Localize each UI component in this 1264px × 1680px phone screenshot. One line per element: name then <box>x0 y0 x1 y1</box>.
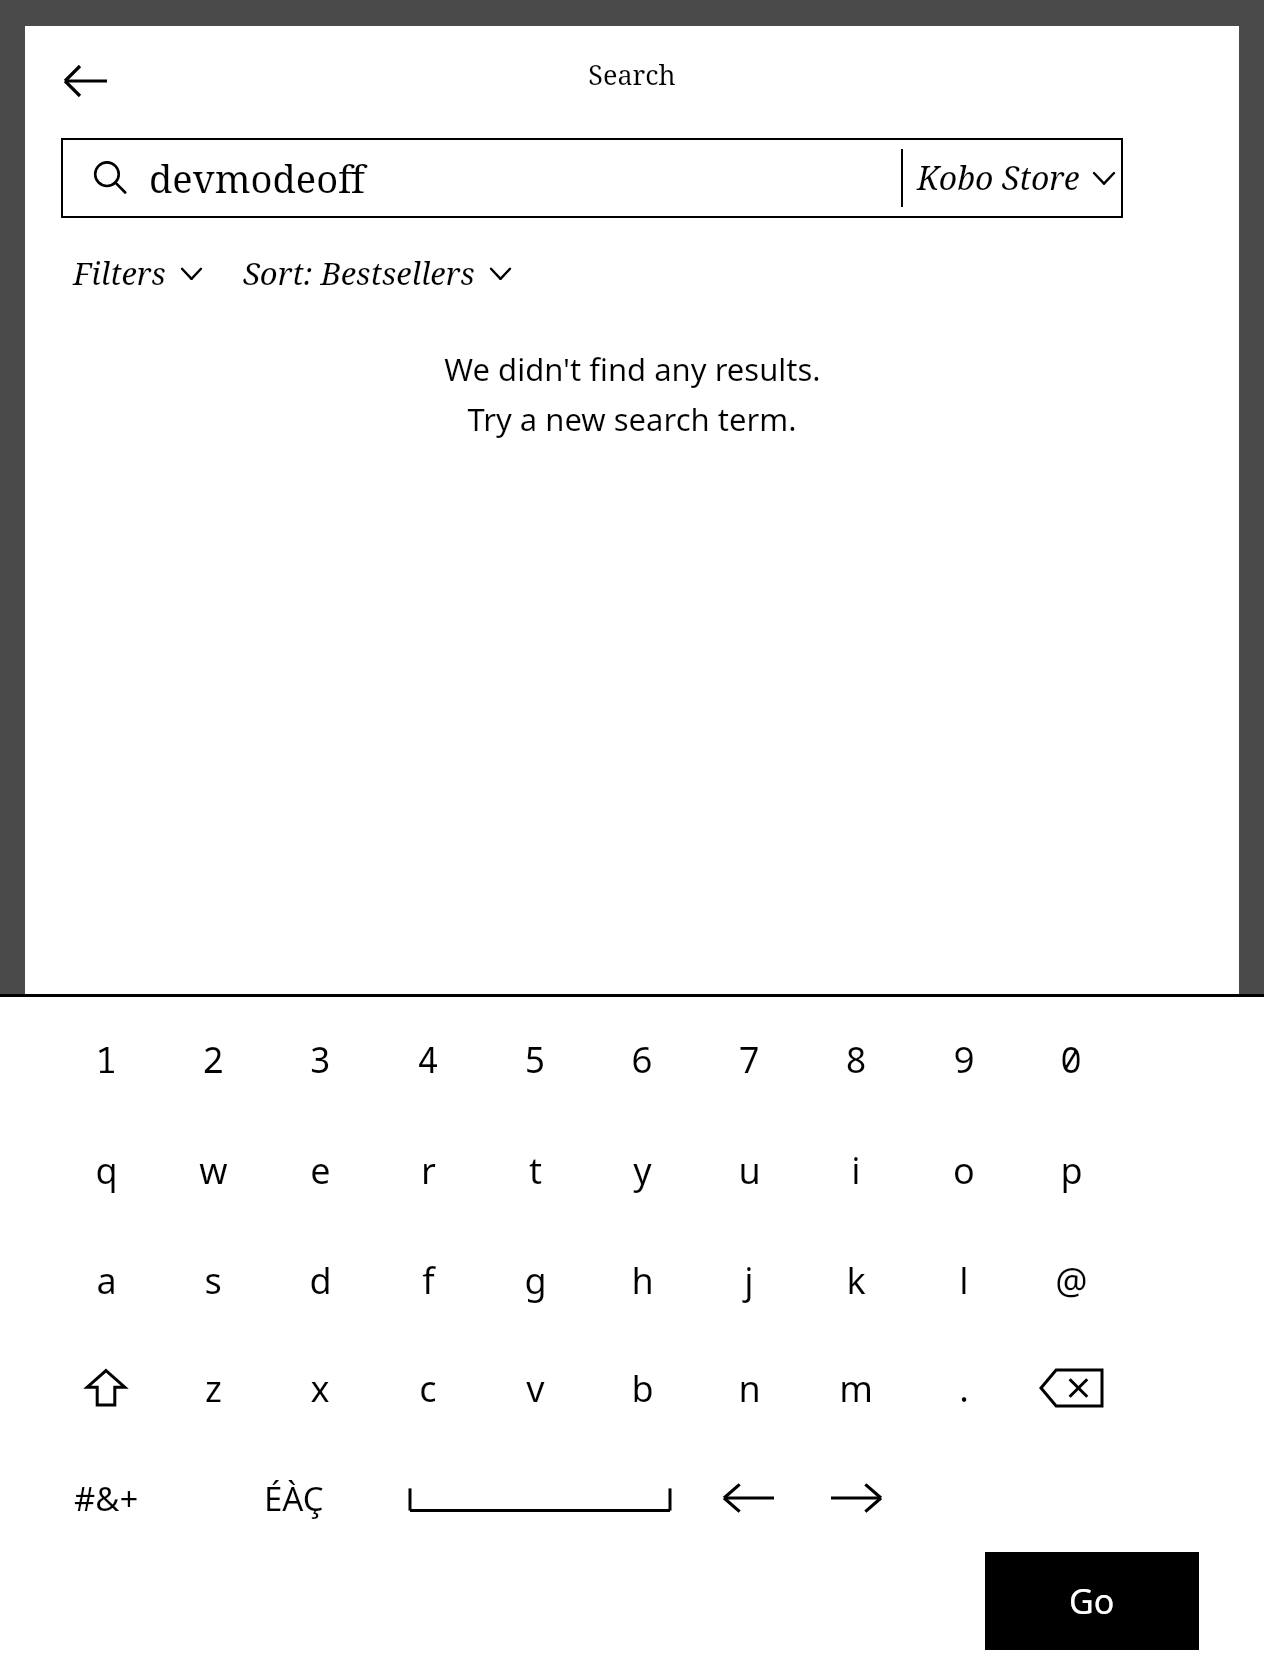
staticText: 7 <box>738 1035 760 1084</box>
staticText: e <box>310 1146 331 1195</box>
staticText: We didn't find any results. <box>444 348 821 390</box>
button[interactable]: Cursor left <box>696 1456 802 1540</box>
staticText: 2 <box>202 1035 224 1084</box>
button[interactable]: n <box>696 1348 802 1428</box>
staticText: i <box>851 1146 861 1195</box>
button[interactable]: e <box>267 1130 373 1210</box>
staticText: Try a new search term. <box>467 398 797 440</box>
button[interactable]: . <box>911 1348 1017 1428</box>
staticText: 4 <box>417 1035 439 1084</box>
staticText: p <box>1060 1146 1083 1195</box>
staticText: 8 <box>845 1035 867 1084</box>
staticText: b <box>631 1364 654 1413</box>
button[interactable]: 2 <box>160 1019 266 1099</box>
staticText: n <box>738 1364 761 1413</box>
button[interactable]: q <box>53 1130 159 1210</box>
staticText: w <box>199 1146 228 1195</box>
button[interactable]: 5 <box>482 1019 588 1099</box>
button[interactable]: b <box>589 1348 695 1428</box>
staticText: q <box>95 1146 118 1195</box>
staticText: o <box>953 1146 975 1195</box>
button[interactable]: Shift <box>58 1348 154 1428</box>
staticText: v <box>526 1364 545 1413</box>
staticText: Go <box>1069 1578 1115 1624</box>
button[interactable]: 3 <box>267 1019 373 1099</box>
button[interactable]: m <box>803 1348 909 1428</box>
staticText: Sort: Bestsellers <box>243 252 475 294</box>
button[interactable]: Cursor right <box>803 1456 909 1540</box>
staticText: z <box>205 1364 222 1413</box>
staticText: #&+ <box>74 1476 139 1521</box>
staticText: Kobo Store <box>917 156 1080 200</box>
button[interactable]: r <box>375 1130 481 1210</box>
button[interactable]: g <box>482 1240 588 1320</box>
button[interactable]: Space <box>408 1456 672 1540</box>
button[interactable]: 9 <box>911 1019 1017 1099</box>
staticText: a <box>96 1256 117 1305</box>
button[interactable]: s <box>160 1240 266 1320</box>
button[interactable]: 0 <box>1018 1019 1124 1099</box>
staticText: k <box>846 1256 866 1305</box>
staticText: d <box>309 1256 332 1305</box>
button[interactable]: Sort: Bestsellers <box>243 244 510 302</box>
button[interactable]: 6 <box>589 1019 695 1099</box>
staticText: s <box>204 1256 222 1305</box>
button[interactable]: f <box>375 1240 481 1320</box>
button[interactable]: Kobo Store <box>917 138 1114 218</box>
button[interactable]: i <box>803 1130 909 1210</box>
button[interactable]: x <box>267 1348 373 1428</box>
button[interactable]: a <box>53 1240 159 1320</box>
staticText: 1 <box>95 1035 117 1084</box>
staticText: 9 <box>953 1035 975 1084</box>
button[interactable]: 1 <box>53 1019 159 1099</box>
button[interactable]: t <box>482 1130 588 1210</box>
staticText: t <box>529 1146 542 1195</box>
staticText: r <box>421 1146 436 1195</box>
staticText: ÉÀÇ <box>264 1476 324 1521</box>
staticText: m <box>839 1364 873 1413</box>
staticText: j <box>744 1256 754 1305</box>
staticText: 0 <box>1060 1035 1082 1084</box>
staticText: @ <box>1055 1256 1088 1305</box>
button[interactable]: Filters <box>73 244 201 302</box>
button[interactable]: ÉÀÇ <box>234 1456 354 1540</box>
button[interactable]: w <box>160 1130 266 1210</box>
staticText: 3 <box>309 1035 331 1084</box>
button[interactable]: 7 <box>696 1019 802 1099</box>
button[interactable]: o <box>911 1130 1017 1210</box>
button[interactable]: z <box>160 1348 266 1428</box>
staticText: Search <box>25 56 1239 93</box>
button[interactable]: j <box>696 1240 802 1320</box>
button[interactable]: v <box>482 1348 588 1428</box>
button[interactable]: 4 <box>375 1019 481 1099</box>
staticText: 5 <box>524 1035 546 1084</box>
staticText: h <box>631 1256 654 1305</box>
staticText: u <box>738 1146 761 1195</box>
button[interactable]: Back <box>47 48 123 114</box>
staticText: c <box>419 1364 437 1413</box>
staticText: x <box>310 1364 330 1413</box>
button[interactable]: l <box>911 1240 1017 1320</box>
button[interactable]: u <box>696 1130 802 1210</box>
staticText: l <box>959 1256 969 1305</box>
button[interactable]: d <box>267 1240 373 1320</box>
button[interactable]: devmodeoff <box>61 138 1123 218</box>
button[interactable]: 8 <box>803 1019 909 1099</box>
staticText: g <box>524 1256 547 1305</box>
staticText: . <box>959 1364 969 1413</box>
button[interactable]: p <box>1018 1130 1124 1210</box>
button[interactable]: #&+ <box>53 1456 159 1540</box>
button[interactable]: @ <box>1018 1240 1124 1320</box>
button[interactable]: c <box>375 1348 481 1428</box>
staticText: f <box>422 1256 435 1305</box>
staticText: y <box>633 1146 652 1195</box>
button[interactable]: k <box>803 1240 909 1320</box>
button[interactable]: Go <box>985 1552 1199 1650</box>
staticText: Filters <box>73 252 166 294</box>
button[interactable]: Backspace <box>1018 1348 1124 1428</box>
button[interactable]: h <box>589 1240 695 1320</box>
staticText: 6 <box>631 1035 653 1084</box>
staticText: devmodeoff <box>149 152 365 204</box>
button[interactable]: y <box>589 1130 695 1210</box>
